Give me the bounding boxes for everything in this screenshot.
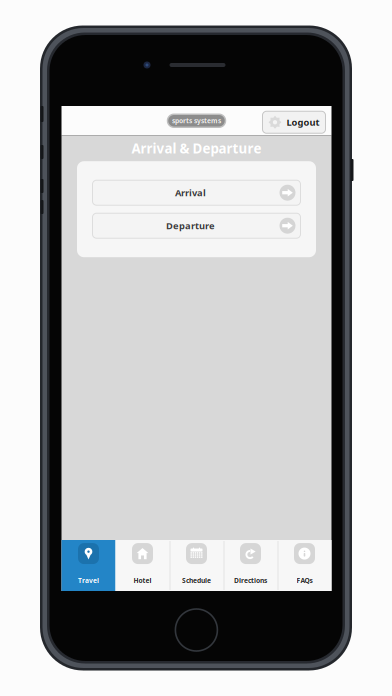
staticText: Arrival & Departure: [131, 139, 261, 157]
button[interactable]: Directions: [223, 540, 277, 591]
button[interactable]: Travel: [61, 540, 115, 591]
button[interactable]: Schedule: [169, 540, 223, 591]
staticText: FAQs: [296, 576, 312, 585]
staticText: Directions: [234, 576, 267, 585]
staticText: Arrival: [175, 186, 206, 199]
button[interactable]: Departure: [92, 213, 300, 238]
staticText: Hotel: [133, 576, 151, 585]
button[interactable]: FAQs: [277, 540, 331, 591]
staticText: Schedule: [182, 576, 211, 585]
staticText: Departure: [166, 219, 215, 232]
button[interactable]: Logout: [262, 111, 325, 133]
button[interactable]: Arrival: [92, 180, 300, 205]
staticText: Logout: [286, 116, 319, 128]
staticText: sports systems: [172, 116, 221, 125]
staticText: Travel: [78, 576, 99, 585]
button[interactable]: Hotel: [115, 540, 169, 591]
